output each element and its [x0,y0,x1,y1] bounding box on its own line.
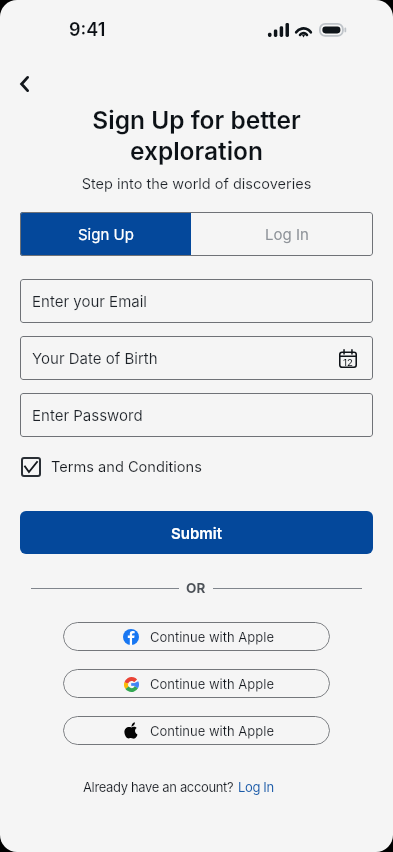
staticText: 9:41 [69,19,106,41]
button[interactable]: Terms and Conditions [21,456,202,478]
staticText: Already have an account? [83,779,234,795]
button[interactable]: Your Date of Birth [20,336,373,380]
staticText: Continue with Apple [150,676,274,692]
button[interactable]: Continue with Apple [63,669,330,698]
staticText: Continue with Apple [150,629,274,645]
button[interactable]: Back [4,64,44,104]
button[interactable]: Log In [191,212,373,256]
button[interactable]: Log In [238,779,274,795]
button[interactable]: Continue with Apple [63,622,330,651]
button[interactable]: Sign Up [20,212,191,256]
staticText: Enter your Email [32,292,147,310]
staticText: Sign Up [78,225,134,243]
staticText: Enter Password [32,406,143,424]
staticText: Your Date of Birth [32,349,158,367]
staticText: Step into the world of discoveries [0,175,393,193]
staticText: Sign Up for better exploration [0,105,393,166]
button[interactable]: Submit [20,511,373,554]
staticText: Log In [265,225,309,243]
button[interactable]: Enter your Email [20,279,373,323]
staticText: OR [186,580,206,596]
button[interactable]: Enter Password [20,393,373,437]
button[interactable]: Continue with Apple [63,716,330,745]
staticText: Continue with Apple [150,723,274,739]
staticText: 12 [343,357,353,368]
staticText: Submit [171,524,223,542]
staticText: Terms and Conditions [51,458,202,476]
